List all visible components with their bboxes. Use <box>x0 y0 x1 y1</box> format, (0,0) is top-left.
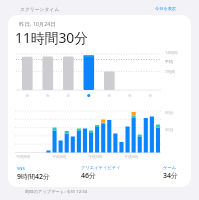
staticText: 46分 <box>81 171 97 181</box>
staticText: 60分 <box>165 110 174 115</box>
staticText: ゲーム <box>163 165 177 170</box>
staticText: 前回のアップデート: 今日 12:34 <box>25 188 88 194</box>
button[interactable]: 今日を表示 <box>155 6 177 11</box>
staticText: 7時間 <box>165 69 176 74</box>
staticText: 34分 <box>163 171 179 181</box>
staticText: 昨日, 10月24日 <box>19 20 56 27</box>
staticText: 30分 <box>165 127 174 132</box>
staticText: 午前0時 <box>16 154 31 159</box>
staticText: 午後6時 <box>124 154 139 159</box>
button[interactable]: クリエイティビティ <box>81 165 121 181</box>
staticText: 午前6時 <box>52 154 67 159</box>
staticText: クリエイティビティ <box>81 165 121 170</box>
button[interactable]: SNS <box>17 165 51 182</box>
button[interactable]: 昨日, 10月24日 <box>8 15 191 187</box>
staticText: 9時間42分 <box>17 172 51 182</box>
button[interactable]: ゲーム <box>163 165 179 181</box>
staticText: 平均 <box>165 59 173 64</box>
staticText: 午後0時 <box>88 154 103 159</box>
staticText: 今日を表示 <box>155 6 177 11</box>
staticText: SNS <box>17 165 25 171</box>
staticText: 14時間 <box>165 50 178 55</box>
staticText: スクリーンタイム <box>20 6 60 12</box>
staticText: 11時間30分 <box>15 28 88 47</box>
